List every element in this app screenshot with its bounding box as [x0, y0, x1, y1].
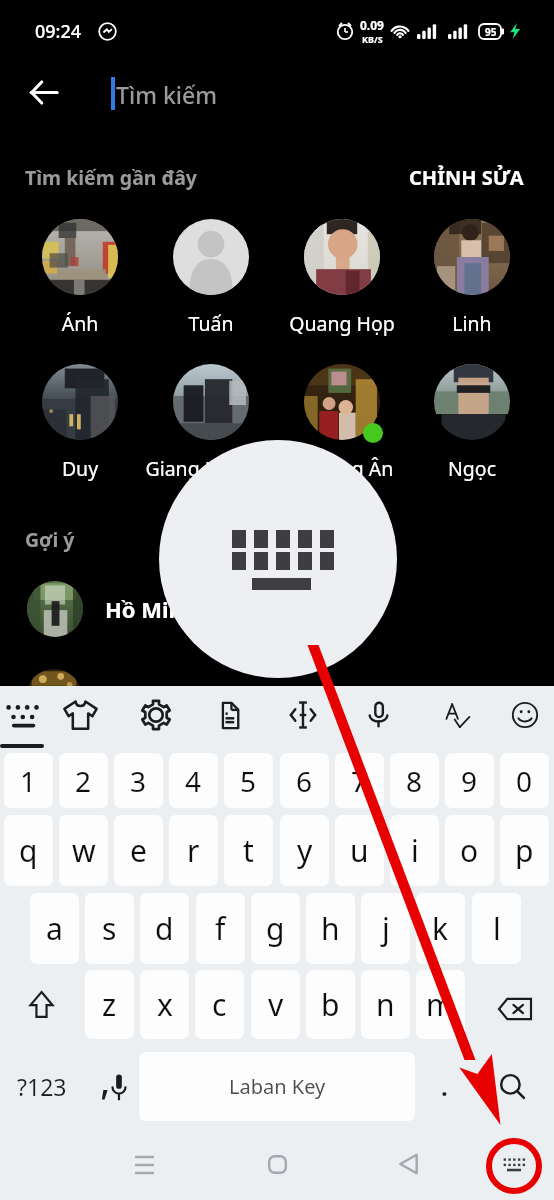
button[interactable]: w	[59, 815, 108, 886]
staticText: CHỈNH SỬA	[409, 164, 524, 191]
button[interactable]: ?123	[2, 1052, 82, 1121]
staticText: KB/S	[362, 33, 383, 45]
button[interactable]: Back	[15, 64, 72, 121]
staticText: Tuấn	[131, 310, 291, 337]
button[interactable]: Settings	[132, 691, 180, 739]
button[interactable]: j	[361, 893, 410, 964]
staticText: Ngọc	[392, 455, 552, 482]
button[interactable]: Back	[378, 1134, 438, 1194]
button[interactable]: q	[4, 815, 53, 886]
button[interactable]: Search	[484, 1052, 542, 1121]
button[interactable]: Laban Key	[139, 1052, 415, 1121]
staticText: 0.09	[360, 17, 384, 33]
staticText: 7	[351, 762, 368, 800]
staticText: t	[243, 830, 254, 871]
button[interactable]: i	[390, 815, 439, 886]
staticText: Phương Ân	[262, 455, 422, 482]
staticText: n	[376, 984, 395, 1025]
button[interactable]: 6	[280, 753, 329, 808]
button[interactable]	[173, 219, 249, 295]
button[interactable]: d	[140, 893, 189, 964]
button[interactable]: Voice typing	[84, 1052, 138, 1121]
staticText: Tìm kiếm gần đây	[25, 164, 197, 191]
button[interactable]: Shift	[4, 970, 79, 1039]
staticText: 9	[461, 762, 478, 800]
button[interactable]: 0	[500, 753, 549, 808]
staticText: Linh	[392, 310, 552, 337]
button[interactable]	[42, 364, 118, 440]
button[interactable]: z	[85, 970, 134, 1039]
button[interactable]: s	[85, 893, 134, 964]
button[interactable]: CHỈNH SỬA	[409, 164, 524, 191]
staticText: 09:24	[35, 19, 82, 44]
button[interactable]: n	[361, 970, 410, 1039]
button[interactable]: 1	[4, 753, 53, 808]
staticText: ?123	[17, 1071, 67, 1102]
staticText: k	[432, 908, 449, 949]
staticText: Giang Nguyễn	[131, 455, 291, 482]
button[interactable]: v	[251, 970, 300, 1039]
button[interactable]	[434, 219, 510, 295]
staticText: Ánh	[0, 310, 160, 337]
staticText: x	[157, 984, 173, 1025]
button[interactable]: k	[416, 893, 465, 964]
button[interactable]: Keyboard	[0, 690, 46, 738]
button[interactable]: b	[306, 970, 355, 1039]
button[interactable]: t	[224, 815, 273, 886]
button[interactable]: Voice input	[355, 691, 403, 739]
button[interactable]	[42, 219, 118, 295]
button[interactable]: l	[472, 893, 521, 964]
button[interactable]: p	[500, 815, 549, 886]
button[interactable]: x	[140, 970, 189, 1039]
button[interactable]: Emoji	[501, 691, 549, 739]
button[interactable]: y	[280, 815, 329, 886]
button[interactable]: Home	[247, 1134, 307, 1194]
staticText: u	[350, 830, 369, 871]
button[interactable]: .	[418, 1052, 470, 1121]
button[interactable]: a	[30, 893, 79, 964]
button[interactable]: Theme	[56, 691, 104, 739]
button[interactable]: c	[195, 970, 244, 1039]
staticText: 1	[20, 762, 37, 800]
button[interactable]: r	[169, 815, 218, 886]
button[interactable]: Spell check	[432, 691, 480, 739]
button[interactable]	[434, 364, 510, 440]
staticText: q	[19, 830, 38, 871]
button[interactable]: m	[416, 970, 465, 1039]
staticText: 4	[185, 762, 202, 800]
staticText: 95	[485, 25, 497, 39]
staticText: g	[266, 908, 285, 949]
staticText: Quang Họp	[262, 310, 422, 337]
button[interactable]: 4	[169, 753, 218, 808]
button[interactable]: 5	[224, 753, 273, 808]
button[interactable]: g	[251, 893, 300, 964]
button[interactable]: Recents	[114, 1134, 174, 1194]
button[interactable]: Hide keyboard	[484, 1134, 544, 1194]
staticText: Duy	[0, 455, 160, 482]
staticText: z	[102, 984, 117, 1025]
staticText: s	[102, 908, 117, 949]
button[interactable]: Hồ Minh	[0, 578, 554, 640]
staticText: f	[215, 908, 226, 949]
button[interactable]: h	[306, 893, 355, 964]
staticText: 2	[75, 762, 92, 800]
staticText: m	[426, 984, 455, 1025]
button[interactable]: o	[445, 815, 494, 886]
button[interactable]: 3	[114, 753, 163, 808]
button[interactable]: 2	[59, 753, 108, 808]
button[interactable]: f	[196, 893, 245, 964]
button[interactable]: 7	[335, 753, 384, 808]
button[interactable]	[304, 364, 380, 440]
button[interactable]: u	[335, 815, 384, 886]
staticText: 8	[406, 762, 423, 800]
button[interactable]: 9	[445, 753, 494, 808]
staticText: 6	[296, 762, 313, 800]
staticText: a	[46, 908, 63, 949]
button[interactable]	[173, 364, 249, 440]
button[interactable]: Move cursor	[279, 691, 327, 739]
button[interactable]: Backspace	[478, 974, 552, 1044]
button[interactable]	[304, 219, 380, 295]
button[interactable]: 8	[390, 753, 439, 808]
button[interactable]: e	[114, 815, 163, 886]
button[interactable]: Clipboard	[206, 691, 254, 739]
